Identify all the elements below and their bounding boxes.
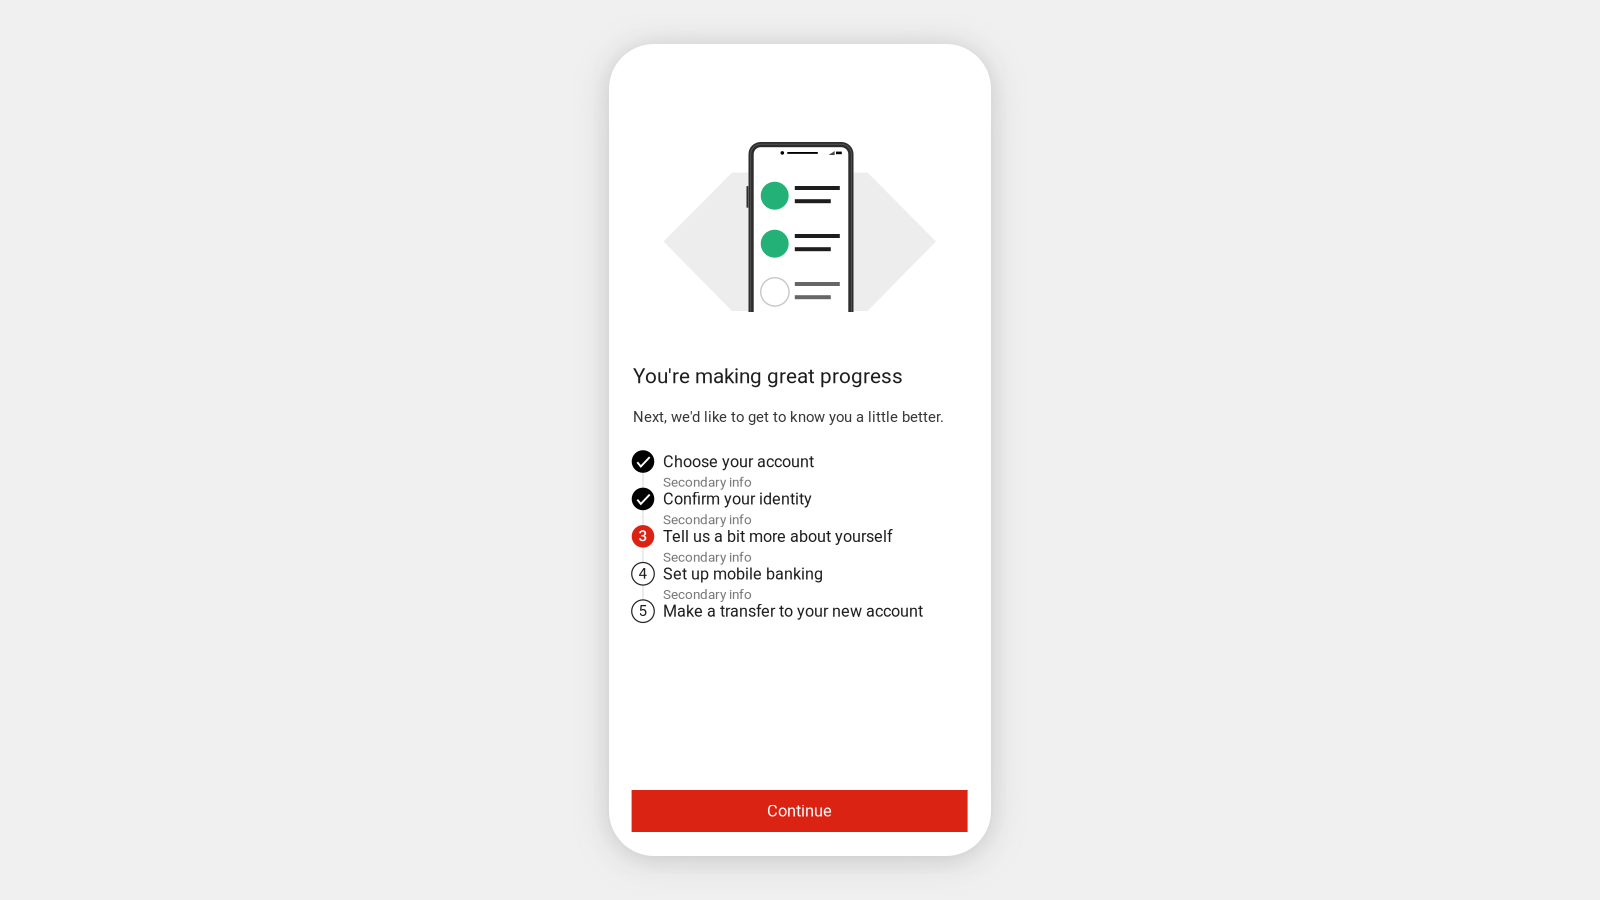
staticText: Secondary info xyxy=(663,474,752,490)
button[interactable]: 5 xyxy=(632,600,952,622)
staticText: Choose your account xyxy=(663,452,814,471)
staticText: Make a transfer to your new account xyxy=(663,602,923,621)
staticText: Secondary info xyxy=(663,512,752,527)
staticText: 3 xyxy=(638,527,647,545)
staticText: 4 xyxy=(638,565,647,582)
staticText: Set up mobile banking xyxy=(663,564,823,583)
button[interactable]: 3 xyxy=(632,525,952,562)
button[interactable]: 4 xyxy=(632,562,952,600)
staticText: Secondary info xyxy=(663,587,752,602)
staticText: Tell us a bit more about yourself xyxy=(663,527,893,546)
button[interactable]: Confirm your identity xyxy=(632,488,952,525)
staticText: Confirm your identity xyxy=(663,490,812,508)
staticText: Secondary info xyxy=(663,549,752,565)
staticText: 5 xyxy=(638,602,647,620)
staticText: You're making great progress xyxy=(633,364,903,388)
button[interactable]: Continue xyxy=(632,790,968,832)
staticText: Next, we'd like to get to know you a lit… xyxy=(633,408,944,425)
button[interactable]: Choose your account xyxy=(632,450,952,488)
staticText: Continue xyxy=(767,801,832,821)
